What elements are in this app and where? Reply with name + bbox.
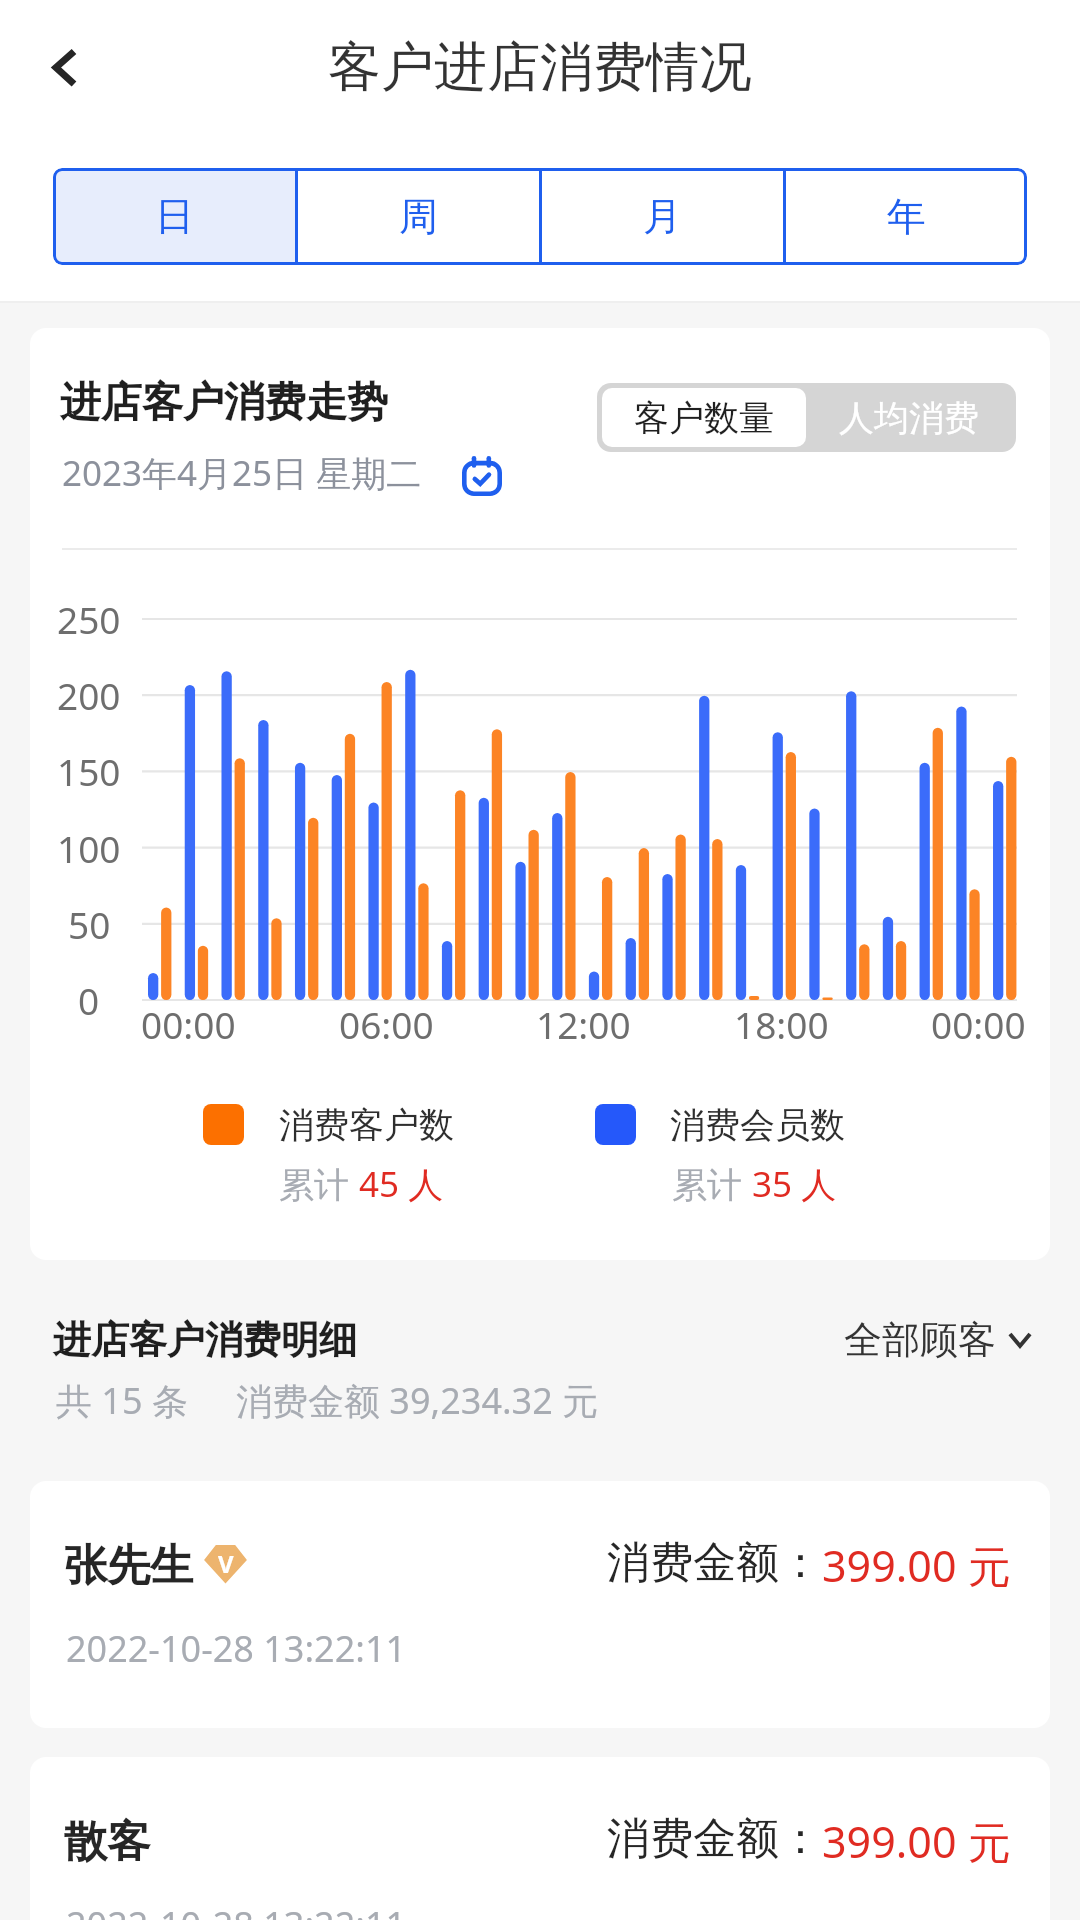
- staticText: 客户数量: [634, 396, 774, 440]
- staticText: 35 人: [752, 1160, 837, 1208]
- button[interactable]: 张先生: [30, 1481, 1050, 1728]
- button[interactable]: 散客: [30, 1757, 1050, 1920]
- button[interactable]: 日: [53, 168, 295, 265]
- button[interactable]: 年: [786, 168, 1027, 265]
- staticText: 18:00: [734, 999, 829, 1049]
- button[interactable]: 客户数量: [602, 388, 806, 447]
- staticText: 45 人: [359, 1160, 444, 1208]
- button[interactable]: Pick date: [457, 448, 507, 498]
- staticText: 散客: [64, 1815, 150, 1869]
- staticText: 全部顾客: [844, 1316, 996, 1364]
- staticText: 累计: [279, 1160, 359, 1208]
- staticText: 399.00 元: [822, 1812, 1011, 1871]
- staticText: 张先生: [64, 1539, 193, 1593]
- staticText: 2022-10-28 13:22:11: [66, 1900, 407, 1920]
- staticText: 周: [399, 192, 438, 241]
- staticText: 进店客户消费走势: [60, 377, 388, 429]
- staticText: 进店客户消费明细: [53, 1316, 357, 1364]
- staticText: 2022-10-28 13:22:11: [66, 1624, 407, 1673]
- staticText: 月: [643, 192, 682, 241]
- staticText: 人均消费: [839, 396, 979, 440]
- button[interactable]: 人均消费: [806, 388, 1011, 447]
- staticText: 50: [68, 899, 111, 949]
- staticText: 250: [57, 594, 121, 644]
- staticText: 200: [57, 670, 121, 720]
- staticText: 2023年4月25日 星期二: [62, 449, 422, 497]
- staticText: V: [218, 1547, 234, 1580]
- staticText: 消费金额：: [607, 1536, 822, 1590]
- staticText: 150: [57, 746, 121, 796]
- staticText: 06:00: [339, 999, 434, 1049]
- staticText: 消费金额：: [607, 1812, 822, 1866]
- button[interactable]: 月: [542, 168, 783, 265]
- staticText: 消费客户数: [279, 1103, 454, 1147]
- staticText: 年: [887, 192, 926, 241]
- staticText: 399.00 元: [822, 1536, 1011, 1595]
- staticText: 日: [155, 192, 194, 241]
- staticText: 00:00: [141, 999, 236, 1049]
- staticText: 12:00: [536, 999, 631, 1049]
- staticText: 客户进店消费情况: [328, 34, 752, 101]
- button[interactable]: Back: [20, 30, 94, 104]
- staticText: 消费会员数: [670, 1103, 845, 1147]
- button[interactable]: 全部顾客: [844, 1316, 1034, 1364]
- staticText: 累计: [672, 1160, 752, 1208]
- staticText: 00:00: [931, 999, 1026, 1049]
- staticText: 消费金额 39,234.32 元: [236, 1376, 599, 1425]
- staticText: 0: [78, 975, 100, 1025]
- staticText: 共 15 条: [56, 1376, 188, 1425]
- staticText: 100: [57, 823, 121, 873]
- button[interactable]: 周: [298, 168, 539, 265]
